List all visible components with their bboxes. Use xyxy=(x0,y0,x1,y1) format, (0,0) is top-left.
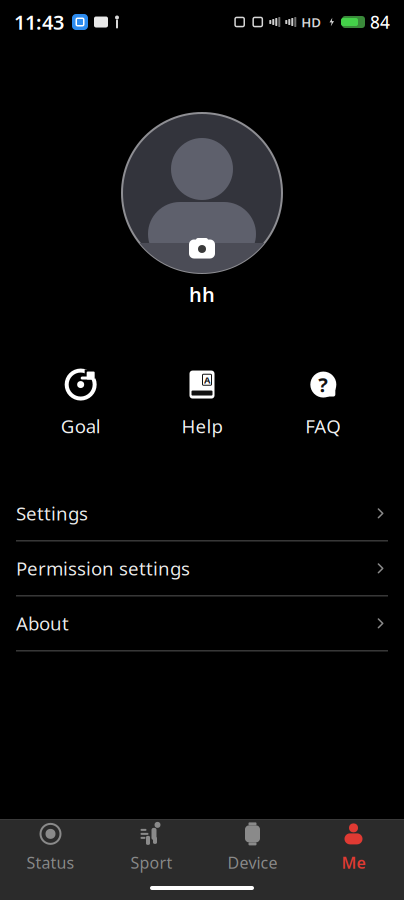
button[interactable]: Device xyxy=(202,820,303,876)
staticText: Device xyxy=(227,852,277,873)
button[interactable]: A xyxy=(141,364,263,442)
staticText: Sport xyxy=(130,852,172,873)
staticText: 11:43 xyxy=(14,9,64,35)
button[interactable]: Settings xyxy=(0,486,404,540)
staticText: Goal xyxy=(61,414,101,438)
staticText: Status xyxy=(26,852,74,873)
staticText: hh xyxy=(189,281,215,308)
button[interactable]: Goal xyxy=(20,364,141,442)
staticText: Permission settings xyxy=(16,556,190,581)
staticText: FAQ xyxy=(305,414,341,438)
button[interactable]: Me xyxy=(303,820,404,876)
staticText: Help xyxy=(181,414,222,438)
button[interactable]: Permission settings xyxy=(0,541,404,595)
button[interactable]: Sport xyxy=(101,820,202,876)
button[interactable]: ? xyxy=(263,364,384,442)
staticText: Me xyxy=(341,852,365,873)
staticText: About xyxy=(16,611,69,636)
button[interactable]: Status xyxy=(0,820,101,876)
staticText: A xyxy=(204,374,210,386)
button[interactable]: About xyxy=(0,596,404,650)
staticText: 84 xyxy=(370,10,390,33)
staticText: ? xyxy=(318,371,328,398)
staticText: Settings xyxy=(16,501,88,526)
button[interactable]: Change profile photo xyxy=(122,113,282,273)
staticText: HD xyxy=(301,13,321,31)
